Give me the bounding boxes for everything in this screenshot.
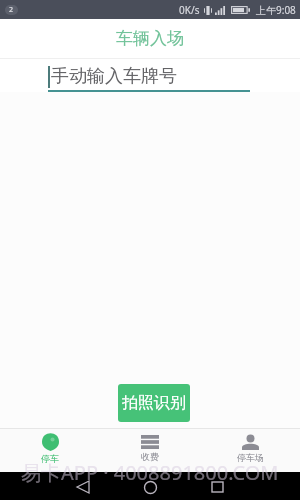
staticText: 停车场 bbox=[237, 452, 264, 463]
button[interactable]: 拍照识别 bbox=[118, 384, 190, 422]
staticText: 0K/s bbox=[179, 3, 200, 17]
button[interactable]: Home bbox=[138, 475, 162, 499]
button[interactable]: 停车场 bbox=[200, 429, 300, 466]
staticText: 车辆入场 bbox=[116, 28, 184, 49]
button[interactable]: Recents bbox=[205, 475, 229, 499]
button[interactable]: 收费 bbox=[100, 429, 200, 466]
staticText: 收费 bbox=[141, 451, 159, 462]
button[interactable]: 停车 bbox=[0, 429, 100, 466]
staticText: 拍照识别 bbox=[122, 393, 186, 413]
staticText: 2 bbox=[9, 5, 14, 15]
staticText: 手动输入车牌号 bbox=[51, 65, 177, 88]
staticText: 易卡APP · 4008891800.COM bbox=[21, 459, 279, 486]
button[interactable]: 手动输入车牌号 bbox=[48, 59, 250, 92]
staticText: 停车 bbox=[41, 453, 59, 464]
staticText: 上午9:08 bbox=[256, 3, 296, 17]
button[interactable]: Back bbox=[71, 475, 95, 499]
